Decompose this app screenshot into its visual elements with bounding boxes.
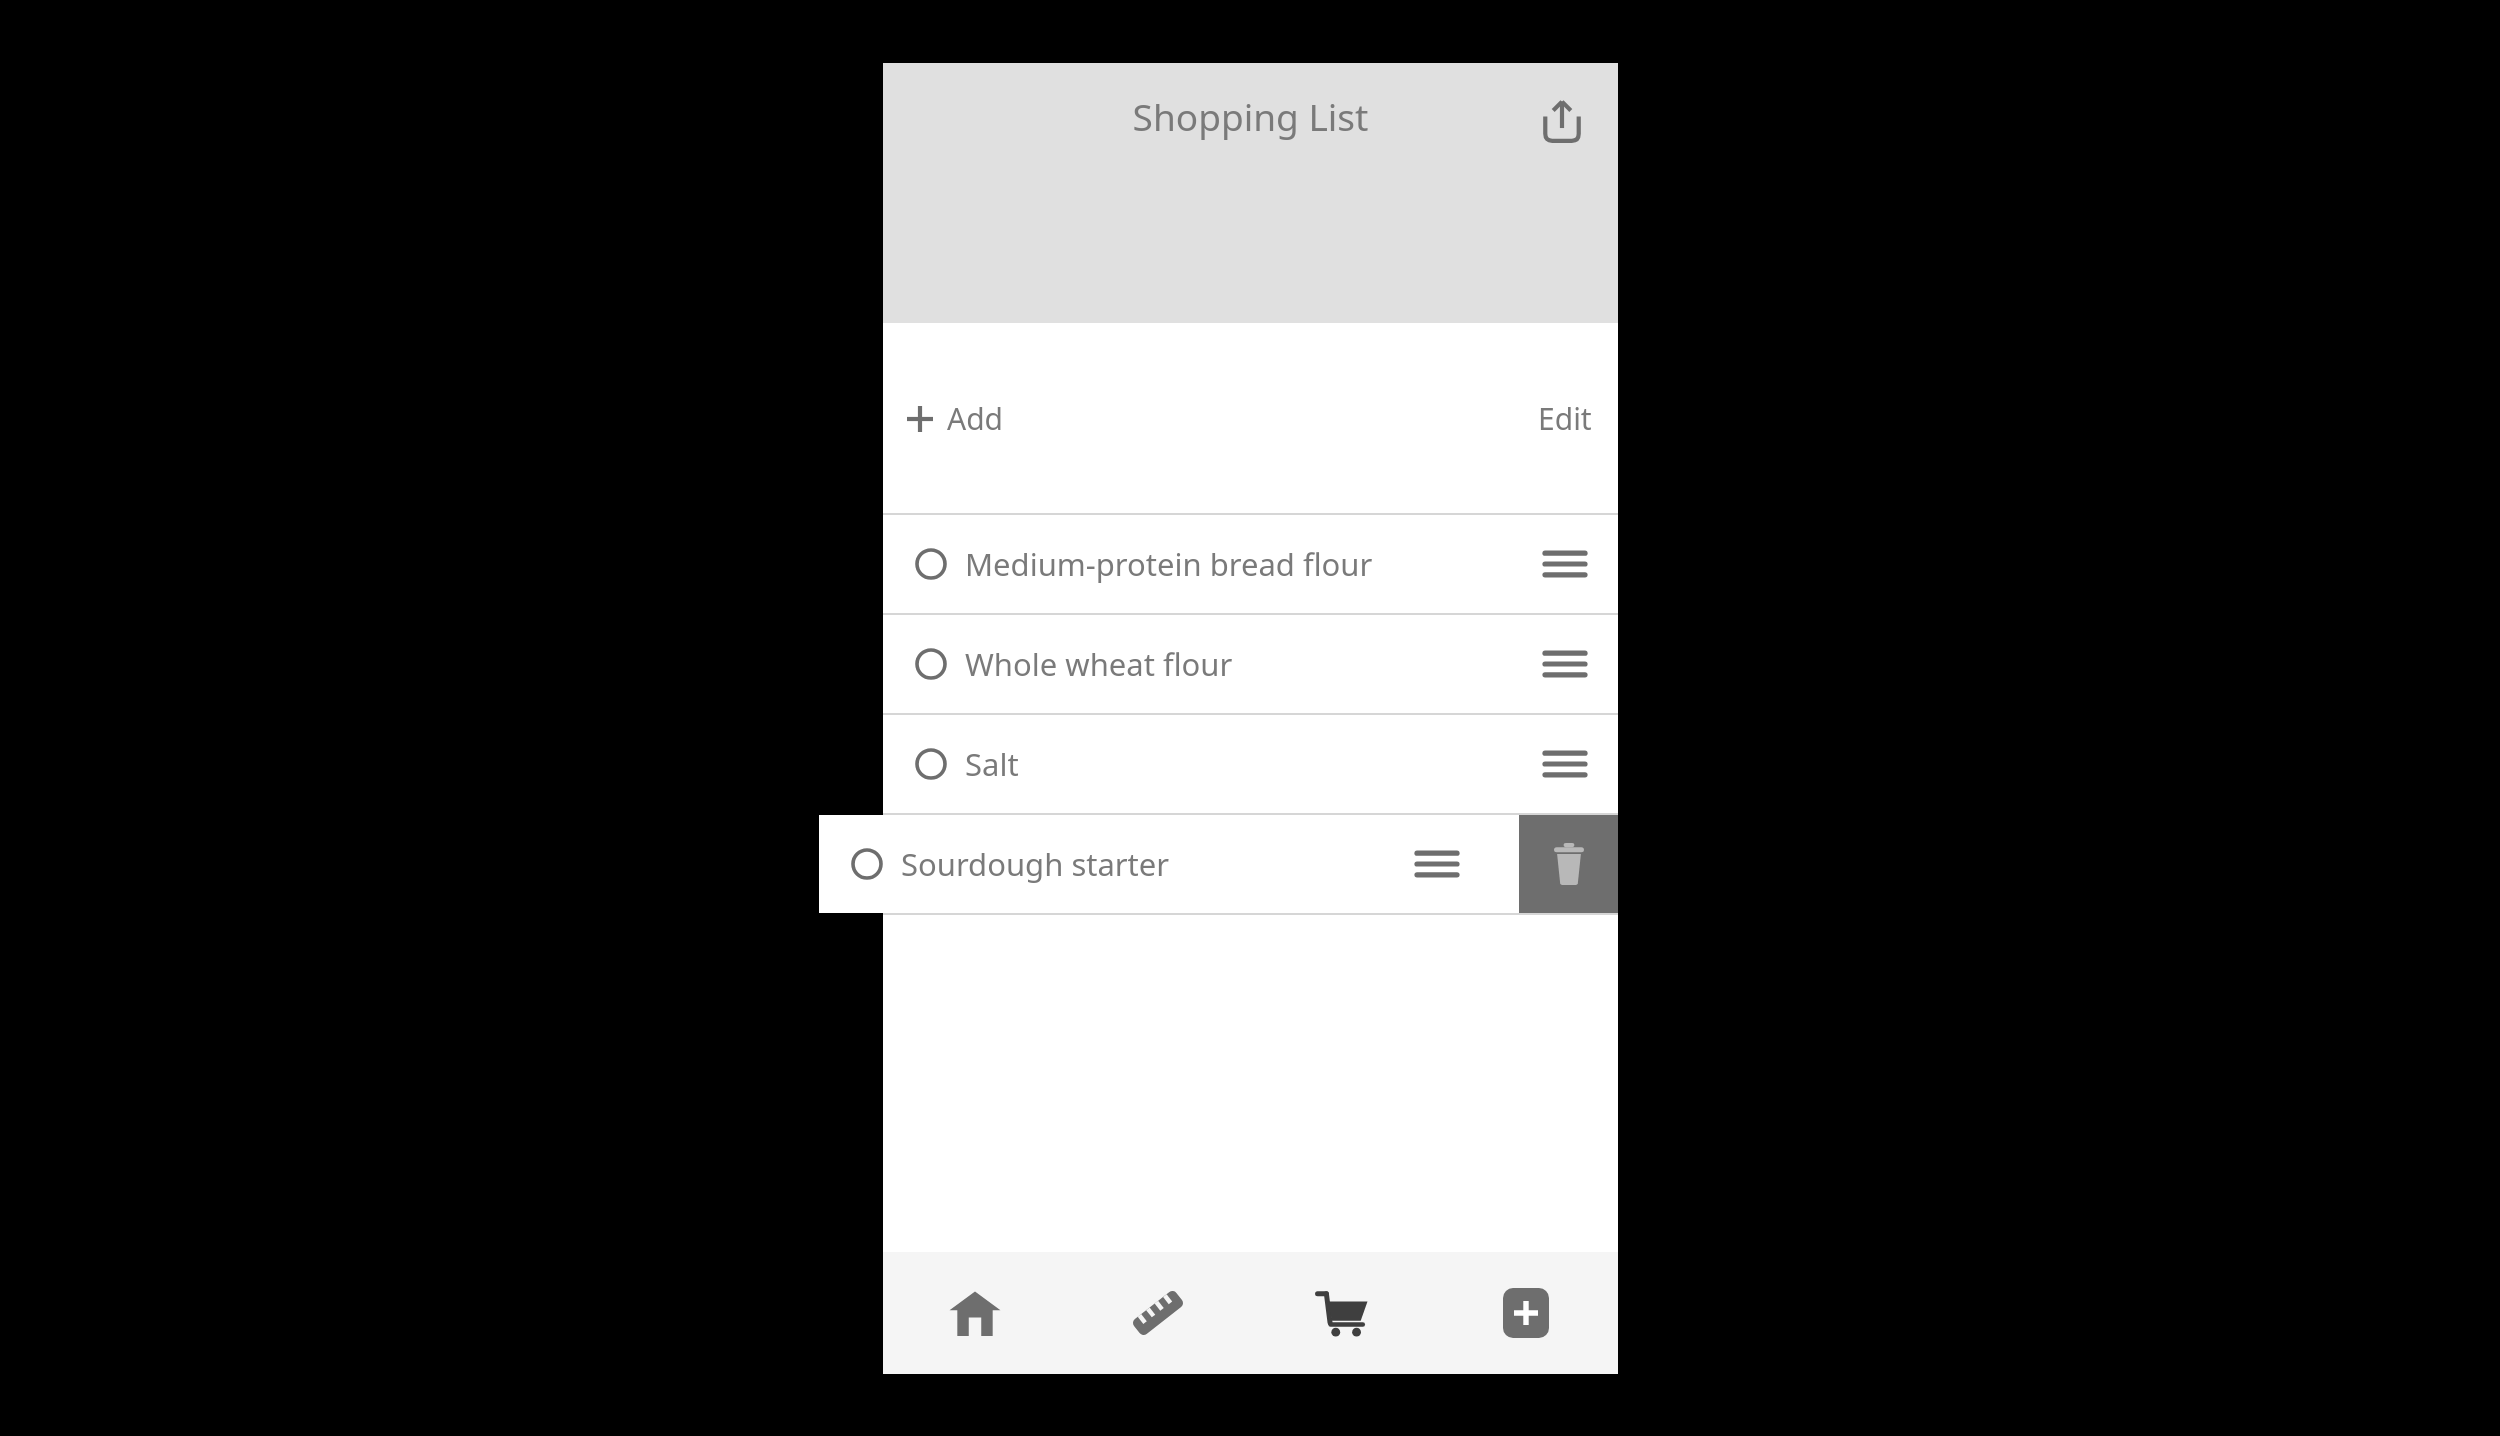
button[interactable]: Add item [1434, 1252, 1618, 1374]
button[interactable]: Add [897, 384, 1014, 453]
staticText: Add [947, 398, 1004, 439]
button[interactable]: Reorder Sourdough starter [1400, 827, 1474, 901]
staticText: Sourdough starter [901, 843, 1170, 885]
button[interactable]: Reorder Whole wheat flour [1528, 627, 1602, 701]
button[interactable]: Reorder Medium-protein bread flour [1528, 527, 1602, 601]
staticText: Shopping List [883, 91, 1618, 141]
button[interactable]: Whole wheat flour [883, 615, 1618, 713]
staticText: Medium-protein bread flour [965, 543, 1373, 585]
staticText: Whole wheat flour [965, 643, 1233, 685]
button[interactable]: Shopping cart [1250, 1252, 1434, 1374]
button[interactable]: Medium-protein bread flour [883, 515, 1618, 613]
button[interactable]: Edit [1526, 384, 1604, 453]
button[interactable]: Share [1526, 85, 1598, 157]
button[interactable]: Sourdough starter [819, 815, 1554, 913]
button[interactable]: Delete Sourdough starter [1519, 815, 1618, 913]
staticText: Salt [965, 743, 1019, 785]
button[interactable]: Home [883, 1252, 1066, 1374]
button[interactable]: Salt [883, 715, 1618, 813]
button[interactable]: Reorder Salt [1528, 727, 1602, 801]
button[interactable]: Measurements [1066, 1252, 1250, 1374]
staticText: Edit [1538, 398, 1592, 439]
